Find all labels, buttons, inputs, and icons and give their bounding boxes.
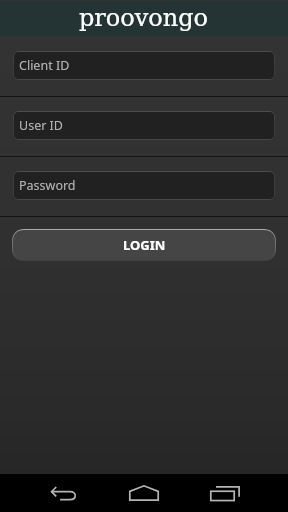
button[interactable]: Home	[114, 474, 174, 512]
button[interactable]: Client ID	[13, 51, 275, 80]
staticText: Client ID	[19, 57, 70, 74]
button[interactable]: Recent apps	[195, 474, 255, 512]
staticText: Password	[19, 177, 76, 194]
staticText: User ID	[19, 117, 63, 134]
button[interactable]: Back	[34, 474, 94, 512]
button[interactable]: LOGIN	[12, 229, 276, 261]
staticText: proovongo	[79, 4, 209, 32]
button[interactable]: Password	[13, 171, 275, 200]
staticText: LOGIN	[123, 236, 166, 254]
button[interactable]: User ID	[13, 111, 275, 140]
